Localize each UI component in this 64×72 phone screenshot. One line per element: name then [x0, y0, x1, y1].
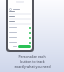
- staticText: button to track: [20, 59, 45, 64]
- staticText: Personalize each: [18, 54, 46, 59]
- button[interactable]: [9, 40, 31, 45]
- button[interactable]: Save: [18, 45, 31, 48]
- button[interactable]: [9, 25, 31, 30]
- button[interactable]: [9, 30, 31, 35]
- button[interactable]: [9, 35, 31, 40]
- button[interactable]: Back: [9, 8, 12, 11]
- staticText: exactly what you need: [14, 64, 51, 69]
